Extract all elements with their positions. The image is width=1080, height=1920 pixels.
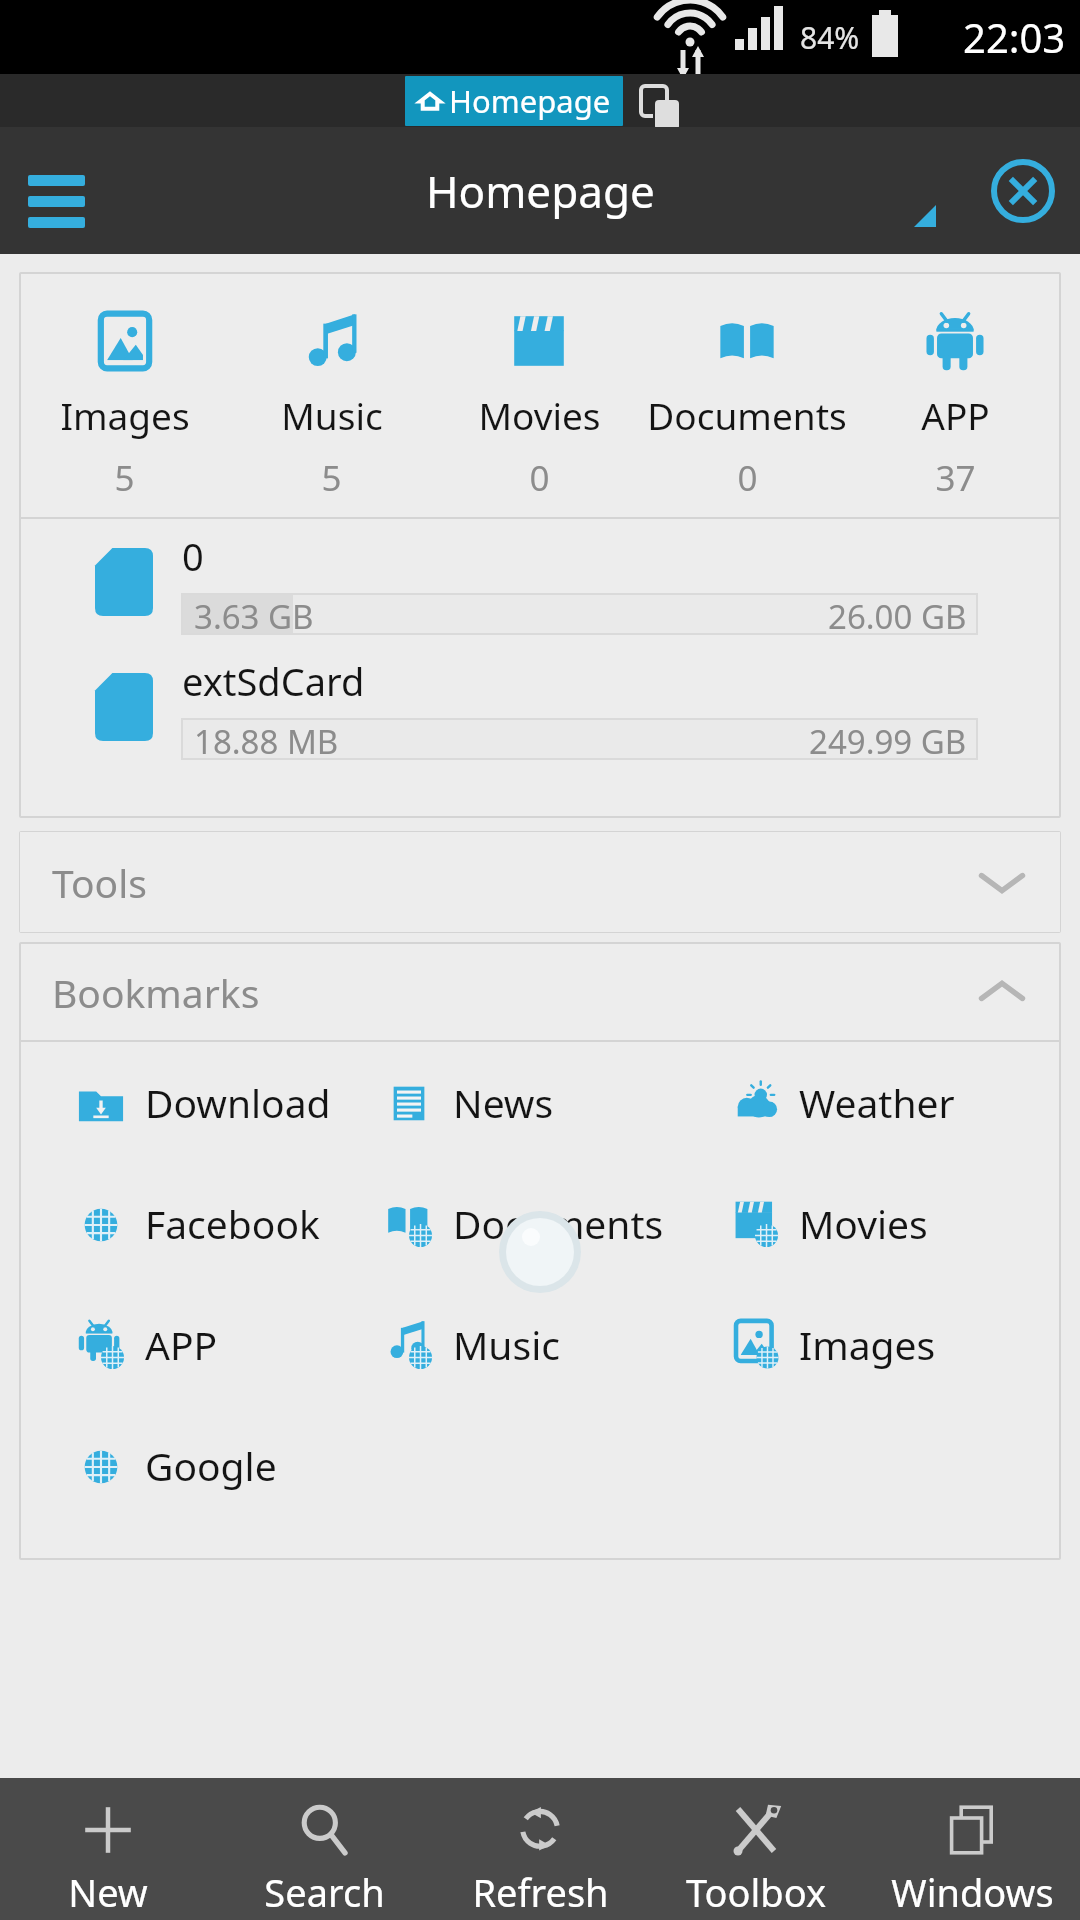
button[interactable]: Movies (435, 274, 643, 517)
staticText: Bookmarks (52, 966, 260, 1019)
button[interactable]: Bookmarks (21, 944, 1059, 1040)
staticText: 22:03 (963, 10, 1066, 64)
button[interactable]: Images (713, 1284, 1059, 1405)
staticText: 0 (737, 454, 758, 502)
staticText: Google (145, 1439, 277, 1492)
button[interactable]: Download (21, 1042, 367, 1163)
staticText: News (453, 1076, 554, 1129)
button[interactable]: Google (21, 1405, 367, 1526)
staticText: Documents (647, 390, 847, 440)
staticText: 3.63 GB (194, 594, 314, 634)
button[interactable]: Device manager (637, 82, 675, 120)
button[interactable]: Weather (713, 1042, 1059, 1163)
staticText: Movies (478, 390, 601, 440)
staticText: Images (799, 1318, 936, 1371)
staticText: 26.00 GB (828, 594, 967, 634)
staticText: Search (264, 1866, 385, 1918)
staticText: Homepage (426, 161, 655, 221)
staticText: 0 (529, 454, 550, 502)
button[interactable]: Close (991, 159, 1055, 223)
staticText: Refresh (472, 1866, 609, 1918)
staticText: 5 (321, 454, 342, 502)
staticText: 249.99 GB (809, 719, 967, 759)
button[interactable]: Images (21, 274, 228, 517)
button[interactable]: Refresh (432, 1778, 648, 1920)
staticText: extSdCard (182, 655, 365, 707)
button[interactable]: APP (21, 1284, 367, 1405)
staticText: New (68, 1866, 148, 1918)
staticText: Music (453, 1318, 560, 1371)
staticText: Images (60, 390, 190, 440)
button[interactable]: Toolbox (648, 1778, 864, 1920)
button[interactable]: Documents (643, 274, 851, 517)
staticText: Toolbox (686, 1866, 826, 1918)
staticText: 0 (182, 530, 204, 582)
button[interactable]: APP (851, 274, 1059, 517)
staticText: 84% (800, 17, 860, 58)
button[interactable]: Music (367, 1284, 713, 1405)
button[interactable]: Homepage (405, 76, 623, 126)
button[interactable]: Search (216, 1778, 432, 1920)
staticText: 5 (114, 454, 135, 502)
staticText: Download (145, 1076, 331, 1129)
button[interactable]: 0 (21, 519, 1059, 644)
button[interactable]: extSdCard (21, 644, 1059, 769)
staticText: Homepage (449, 80, 611, 122)
button[interactable]: New (0, 1778, 216, 1920)
button[interactable]: Facebook (21, 1163, 367, 1284)
button[interactable]: Documents (367, 1163, 713, 1284)
staticText: Weather (799, 1076, 955, 1129)
staticText: Facebook (145, 1197, 320, 1250)
staticText: 37 (935, 454, 976, 502)
button[interactable]: News (367, 1042, 713, 1163)
staticText: APP (921, 390, 990, 440)
button[interactable]: Music (228, 274, 435, 517)
staticText: 18.88 MB (194, 719, 339, 759)
staticText: Tools (52, 856, 147, 909)
staticText: Movies (799, 1197, 928, 1250)
button[interactable]: Windows (864, 1778, 1080, 1920)
staticText: APP (145, 1318, 218, 1371)
staticText: Windows (891, 1866, 1054, 1918)
button[interactable]: Tools (19, 831, 1061, 933)
staticText: Documents (453, 1197, 664, 1250)
button[interactable]: Movies (713, 1163, 1059, 1284)
staticText: Music (281, 390, 383, 440)
button[interactable]: Menu (18, 153, 94, 229)
